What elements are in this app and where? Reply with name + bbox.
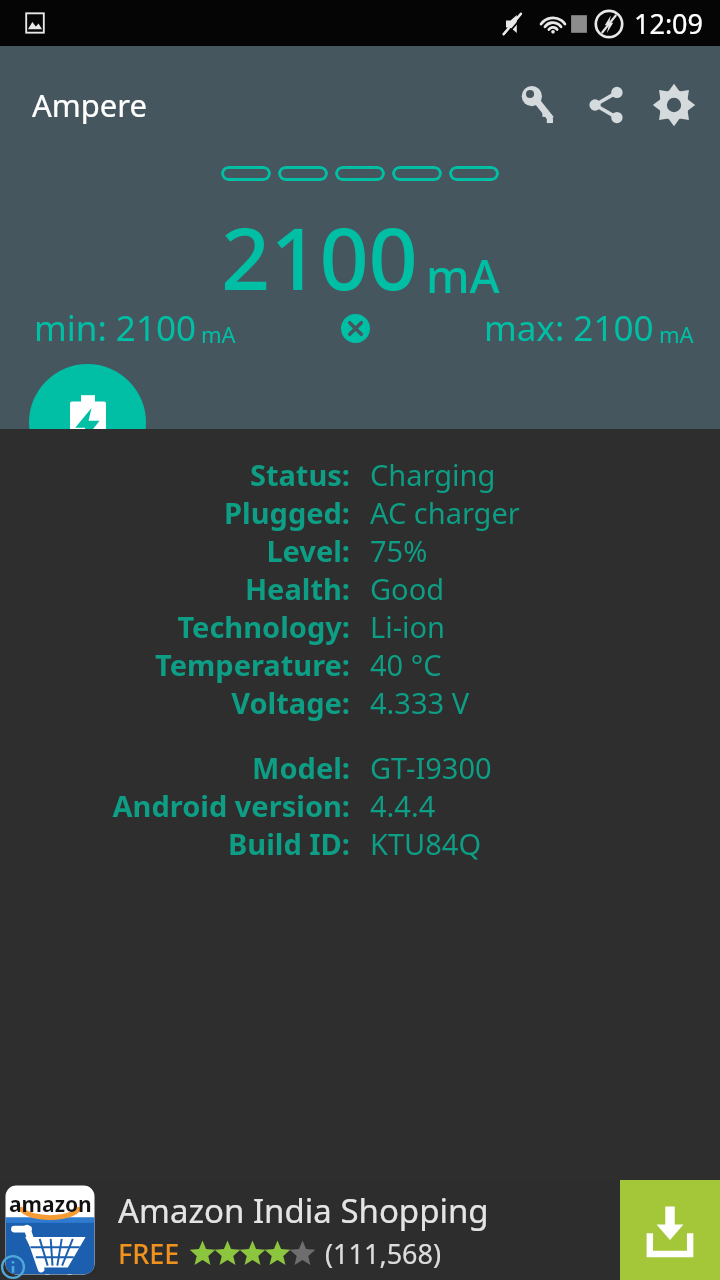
staticText: Status: xyxy=(249,455,350,493)
staticText: (111,568) xyxy=(325,1235,442,1272)
button[interactable]: amazon xyxy=(0,1180,720,1280)
button[interactable]: Share xyxy=(572,71,640,139)
staticText: min: 2100 xyxy=(34,304,196,352)
staticText: 2100 xyxy=(221,198,418,315)
staticText: Plugged: xyxy=(224,493,350,531)
staticText: Amazon India Shopping xyxy=(118,1188,489,1233)
button[interactable]: Unlock pro version xyxy=(504,71,572,139)
button[interactable]: Install xyxy=(620,1180,720,1280)
staticText: 4.333 V xyxy=(370,683,470,721)
staticText: FREE xyxy=(118,1235,180,1272)
staticText: Model: xyxy=(252,748,350,786)
staticText: Android version: xyxy=(112,786,350,824)
staticText: Ampere xyxy=(32,84,148,126)
staticText: GT-I9300 xyxy=(370,748,492,786)
staticText: Li-ion xyxy=(370,607,445,645)
staticText: Temperature: xyxy=(155,645,350,683)
staticText: max: 2100 xyxy=(484,304,654,352)
button[interactable]: Settings xyxy=(640,71,708,139)
staticText: 4.4.4 xyxy=(370,786,436,824)
staticText: mA xyxy=(426,244,500,307)
staticText: mA xyxy=(659,319,694,349)
staticText: AC charger xyxy=(370,493,520,531)
staticText: Voltage: xyxy=(231,683,350,721)
staticText: 75% xyxy=(370,531,428,569)
staticText: Health: xyxy=(244,569,350,607)
button[interactable]: Reset min and max xyxy=(333,306,377,350)
staticText: 40 °C xyxy=(370,645,442,683)
staticText: Good xyxy=(370,569,445,607)
staticText: amazon xyxy=(9,1190,92,1219)
staticText: mA xyxy=(201,319,236,349)
button[interactable]: Battery charging xyxy=(29,364,146,481)
staticText: Technology: xyxy=(177,607,350,645)
staticText: Build ID: xyxy=(228,824,350,862)
staticText: Charging xyxy=(370,455,496,493)
staticText: Level: xyxy=(266,531,350,569)
staticText: KTU84Q xyxy=(370,824,482,862)
staticText: 12:09 xyxy=(634,5,704,42)
